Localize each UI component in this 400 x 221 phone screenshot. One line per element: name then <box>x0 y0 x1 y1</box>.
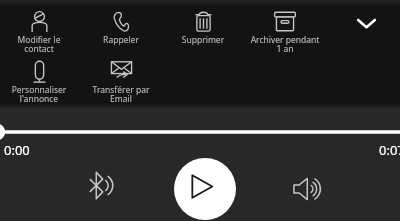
staticText: Archiver pendant 1 an <box>244 34 326 54</box>
staticText: 0:00 <box>4 141 30 159</box>
button[interactable]: Lecture <box>174 158 236 220</box>
staticText: Modifier le contact <box>0 34 80 54</box>
staticText: Supprimer <box>162 34 244 46</box>
button[interactable]: Bluetooth <box>77 167 121 203</box>
button[interactable]: Rappeler <box>80 11 162 56</box>
staticText: Personnaliser l'annonce <box>0 84 80 104</box>
button[interactable]: Réduire <box>342 7 390 39</box>
button[interactable]: Haut-parleur <box>286 171 330 207</box>
button[interactable]: Modifier le contact <box>0 11 80 56</box>
staticText: Rappeler <box>80 34 162 46</box>
button[interactable]: Archiver pendant 1 an <box>244 11 326 56</box>
button[interactable]: Supprimer <box>162 11 244 56</box>
staticText: Transférer par Email <box>80 84 162 104</box>
button[interactable]: Personnaliser l'annonce <box>0 61 80 106</box>
staticText: 0:07 <box>379 141 400 159</box>
button[interactable]: Transférer par Email <box>80 61 162 106</box>
